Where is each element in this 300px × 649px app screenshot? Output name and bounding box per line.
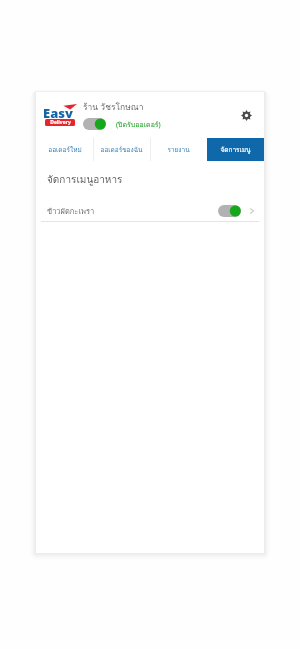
staticText: Easy xyxy=(43,104,73,118)
staticText: Delivery xyxy=(50,119,71,126)
staticText: ร้าน วัชรโกษณา xyxy=(83,100,144,114)
button[interactable]: รายงาน xyxy=(150,138,207,161)
staticText: จัดการเมนู xyxy=(220,145,251,155)
button[interactable]: Toggle xyxy=(218,205,241,217)
staticText: รายงาน xyxy=(167,145,190,155)
button[interactable]: Toggle xyxy=(83,118,106,130)
button[interactable]: ออเดอร์ของฉัน xyxy=(93,138,150,161)
staticText: จัดการเมนูอาหาร xyxy=(47,172,123,188)
button[interactable]: จัดการเมนู xyxy=(207,138,264,161)
staticText: ออเดอร์ของฉัน xyxy=(100,145,143,155)
button[interactable]: ข้าวผัดกะเพรา xyxy=(36,201,264,221)
button[interactable]: Settings xyxy=(236,105,256,125)
staticText: (ปิดรับออเดอร์) xyxy=(116,119,161,130)
staticText: ออเดอร์ใหม่ xyxy=(48,145,82,155)
button[interactable]: ออเดอร์ใหม่ xyxy=(36,138,93,161)
staticText: ข้าวผัดกะเพรา xyxy=(47,205,95,217)
